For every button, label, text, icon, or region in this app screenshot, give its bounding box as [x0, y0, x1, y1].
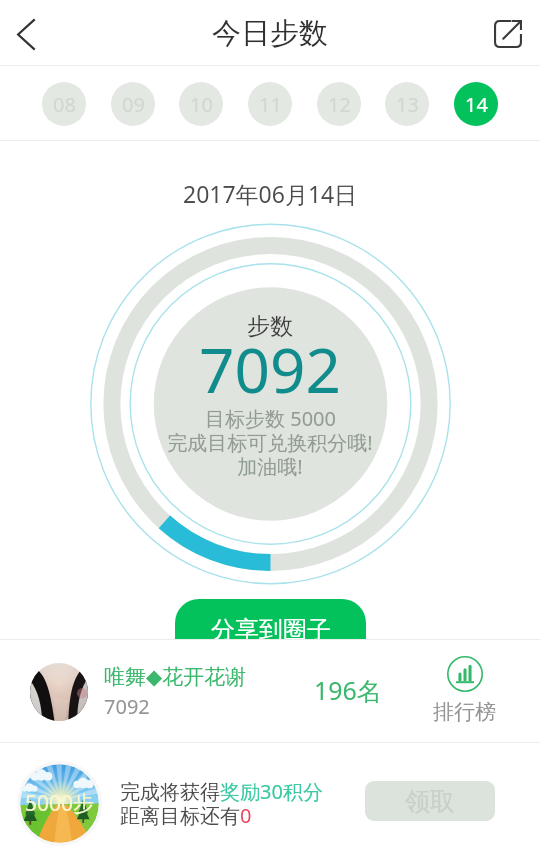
- staticText: 14: [465, 91, 488, 118]
- staticText: 唯舞◆花开花谢: [104, 664, 247, 690]
- staticText: 11: [259, 91, 282, 118]
- staticText: 5000步: [25, 789, 95, 818]
- staticText: 2017年06月14日: [183, 178, 358, 209]
- button[interactable]: 11: [248, 82, 292, 126]
- staticText: 步数: [247, 312, 293, 341]
- staticText: 完成将获得奖励30积分: [120, 778, 323, 805]
- staticText: 距离目标还有0: [120, 802, 252, 829]
- staticText: 196名: [314, 673, 382, 707]
- button[interactable]: 领取: [365, 781, 495, 821]
- staticText: 排行榜: [433, 699, 496, 725]
- button[interactable]: 排行榜: [429, 654, 500, 727]
- staticText: 分享到圈子: [211, 615, 331, 640]
- staticText: 领取: [405, 786, 455, 817]
- button[interactable]: 13: [385, 82, 429, 126]
- button[interactable]: 10: [179, 82, 223, 126]
- staticText: 13: [396, 91, 419, 118]
- button[interactable]: Share: [472, 1, 540, 66]
- staticText: 7092: [199, 327, 341, 411]
- staticText: 7092: [104, 693, 150, 720]
- button[interactable]: 08: [42, 82, 86, 126]
- staticText: 08: [53, 91, 76, 118]
- button[interactable]: 14: [454, 82, 498, 126]
- staticText: 今日步数: [212, 15, 328, 52]
- staticText: 完成目标可兑换积分哦!: [167, 429, 373, 456]
- button[interactable]: 09: [111, 82, 155, 126]
- staticText: 加油哦!: [237, 453, 303, 480]
- button[interactable]: Back: [0, 1, 58, 66]
- button[interactable]: 分享到圈子: [175, 599, 366, 640]
- staticText: 12: [328, 91, 351, 118]
- staticText: 目标步数 5000: [205, 405, 336, 432]
- button[interactable]: 12: [317, 82, 361, 126]
- staticText: 09: [122, 91, 145, 118]
- staticText: 10: [190, 91, 213, 118]
